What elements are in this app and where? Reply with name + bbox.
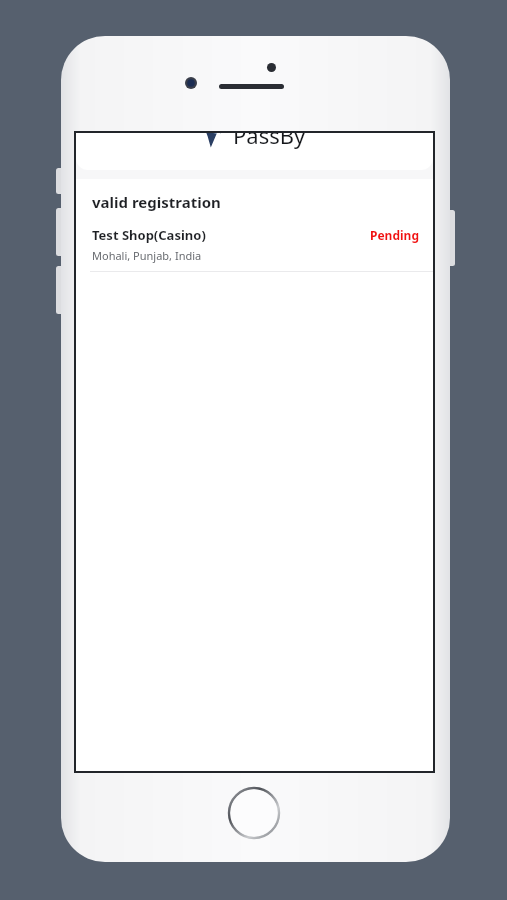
button[interactable]: PassBy — [203, 133, 306, 150]
staticText: Test Shop(Casino) — [92, 226, 206, 244]
button[interactable]: Home — [226, 785, 282, 841]
staticText: Mohali, Punjab, India — [92, 248, 202, 263]
staticText: Pending — [370, 227, 419, 243]
staticText: PassBy — [233, 133, 306, 150]
staticText: valid registration — [92, 192, 221, 212]
button[interactable]: Test Shop(Casino) — [76, 222, 433, 272]
